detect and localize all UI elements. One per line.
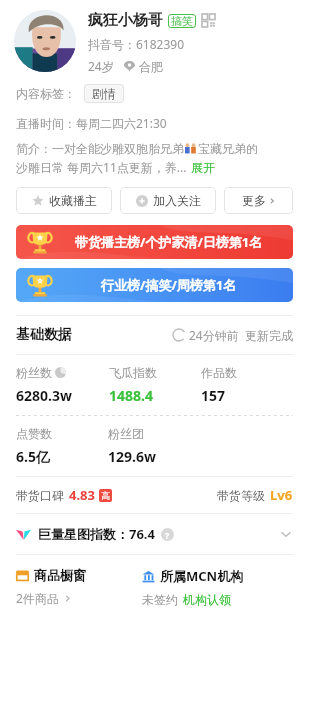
staticText: 展开 xyxy=(191,160,215,175)
staticText: 沙雕日常 每周六11点更新，养... xyxy=(16,159,187,175)
staticText: 157 xyxy=(201,386,226,405)
button[interactable]: 更多 xyxy=(224,187,293,214)
button[interactable]: QR code xyxy=(202,14,215,27)
staticText: 高 xyxy=(101,490,110,501)
button[interactable]: Avatar xyxy=(14,10,76,72)
button[interactable]: Refresh xyxy=(173,329,185,341)
button[interactable]: 机构认领 xyxy=(183,592,231,607)
staticText: 更新完成 xyxy=(245,328,293,343)
staticText: 直播时间：每周二四六21:30 xyxy=(16,115,167,131)
button[interactable]: 行业榜/搞笑/周榜第1名 xyxy=(16,268,293,302)
staticText: 内容标签： xyxy=(16,86,76,101)
staticText: 更多 xyxy=(242,193,266,208)
staticText: 未签约 xyxy=(142,592,178,607)
staticText: Lv6 xyxy=(270,486,293,504)
staticText: 合肥 xyxy=(139,59,163,74)
staticText: 带货等级 xyxy=(217,488,265,503)
staticText: 带货口碑 xyxy=(16,488,64,503)
staticText: 6280.3w xyxy=(16,386,72,405)
staticText: 粉丝数 xyxy=(16,365,52,380)
button[interactable]: 加入关注 xyxy=(120,187,216,214)
staticText: 飞瓜指数 xyxy=(109,365,157,380)
staticText: 巨量星图指数：76.4 xyxy=(38,525,155,543)
staticText: 点赞数 xyxy=(16,426,52,441)
staticText: 宝藏兄弟的 xyxy=(198,141,258,156)
staticText: ? xyxy=(165,529,170,541)
staticText: 疯狂小杨哥 xyxy=(88,11,163,30)
staticText: 所属MCN机构 xyxy=(160,567,244,585)
staticText: 抖音号：6182390 xyxy=(88,36,185,52)
button[interactable]: 巨量星图指数：76.4 xyxy=(0,514,309,554)
button[interactable]: 剧情 xyxy=(84,84,124,103)
staticText: 24分钟前 xyxy=(189,327,239,343)
staticText: 4.83 xyxy=(69,486,95,504)
button[interactable]: 展开 xyxy=(191,160,215,175)
button[interactable]: 商品橱窗 xyxy=(16,567,142,606)
staticText: 24岁 xyxy=(88,58,114,74)
staticText: 带货播主榜/个护家清/日榜第1名 xyxy=(75,233,263,251)
staticText: 加入关注 xyxy=(153,193,201,208)
staticText: 129.6w xyxy=(108,447,156,466)
staticText: 搞笑 xyxy=(171,14,193,28)
staticText: 剧情 xyxy=(92,86,116,101)
other: Help xyxy=(161,528,174,541)
staticText: 简介：一对全能沙雕双胞胎兄弟 xyxy=(16,141,184,156)
other: Expand xyxy=(279,527,293,541)
button[interactable]: 带货播主榜/个护家清/日榜第1名 xyxy=(16,225,293,259)
staticText: 商品橱窗 xyxy=(34,567,86,583)
staticText: 机构认领 xyxy=(183,592,231,607)
staticText: 6.5亿 xyxy=(16,447,50,466)
button[interactable]: 收藏播主 xyxy=(16,187,112,214)
staticText: 基础数据 xyxy=(16,326,72,344)
staticText: 1488.4 xyxy=(109,386,153,405)
staticText: 行业榜/搞笑/周榜第1名 xyxy=(101,276,237,294)
staticText: 2件商品 xyxy=(16,590,59,606)
staticText: 收藏播主 xyxy=(49,193,97,208)
staticText: 粉丝团 xyxy=(108,426,144,441)
staticText: 作品数 xyxy=(201,365,237,380)
